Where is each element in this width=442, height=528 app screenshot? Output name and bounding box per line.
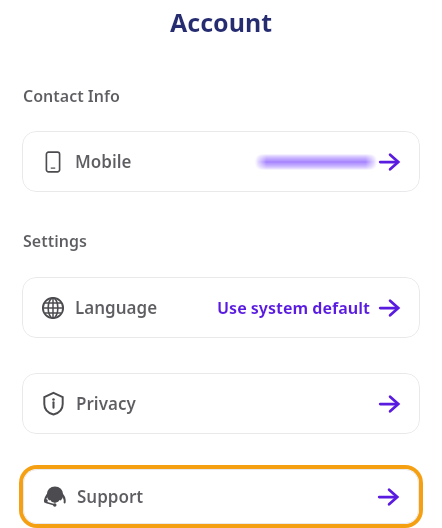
staticText: Contact Info: [23, 85, 120, 107]
staticText: Settings: [23, 230, 87, 252]
staticText: Support: [77, 485, 144, 508]
staticText: Account: [0, 5, 442, 39]
staticText: Language: [75, 296, 158, 319]
button[interactable]: Mobile: [22, 131, 420, 192]
staticText: Mobile: [75, 150, 132, 173]
staticText: Privacy: [76, 392, 136, 415]
button[interactable]: Language: [22, 277, 420, 338]
button[interactable]: Support: [23, 469, 419, 524]
staticText: Use system default: [217, 297, 370, 319]
button[interactable]: Privacy: [22, 373, 420, 434]
